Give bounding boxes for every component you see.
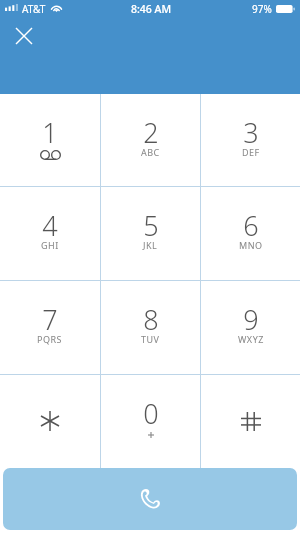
- button[interactable]: 0: [101, 375, 200, 468]
- staticText: 7: [42, 301, 58, 338]
- button[interactable]: Call: [3, 468, 297, 530]
- button[interactable]: 3: [201, 94, 300, 186]
- staticText: 1: [42, 114, 58, 151]
- staticText: 5: [143, 207, 159, 244]
- button[interactable]: 6: [201, 187, 300, 280]
- button[interactable]: 1: [0, 94, 100, 186]
- staticText: 0: [143, 395, 159, 432]
- button[interactable]: 5: [101, 187, 200, 280]
- staticText: 3: [243, 114, 259, 151]
- staticText: JKL: [143, 239, 158, 251]
- button[interactable]: 4: [0, 187, 100, 280]
- button[interactable]: 7: [0, 281, 100, 374]
- staticText: 8:46 AM: [131, 2, 172, 16]
- staticText: 9: [243, 301, 259, 338]
- staticText: MNO: [239, 239, 263, 251]
- staticText: AT&T: [22, 2, 46, 16]
- staticText: 8: [143, 301, 159, 338]
- button[interactable]: 8: [101, 281, 200, 374]
- staticText: GHI: [41, 239, 59, 251]
- button[interactable]: [0, 375, 100, 468]
- staticText: DEF: [242, 146, 260, 158]
- staticText: TUV: [141, 333, 160, 345]
- button[interactable]: Close: [8, 20, 40, 52]
- button[interactable]: 2: [101, 94, 200, 186]
- button[interactable]: 9: [201, 281, 300, 374]
- button[interactable]: [201, 375, 300, 468]
- staticText: ABC: [141, 146, 160, 158]
- staticText: 4: [42, 207, 58, 244]
- staticText: PQRS: [37, 333, 63, 345]
- staticText: 6: [243, 207, 259, 244]
- staticText: WXYZ: [238, 333, 264, 345]
- staticText: 97%: [252, 2, 272, 16]
- staticText: 2: [143, 114, 159, 151]
